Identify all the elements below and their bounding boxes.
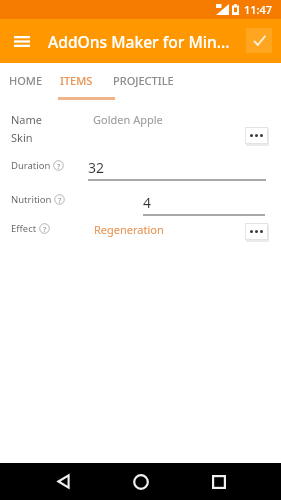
button[interactable]: Help [54,194,65,205]
staticText: AddOns Maker for Min... [48,31,230,52]
staticText: Nutrition [11,193,52,206]
staticText: HOME [9,73,43,88]
staticText: ? [58,195,62,205]
staticText: PROJECTILE [113,73,174,88]
button[interactable]: Back [43,463,83,500]
staticText: 4 [143,193,152,212]
button[interactable]: More options [245,223,268,240]
button[interactable]: Recent apps [199,463,239,500]
button[interactable]: HOME [0,63,53,100]
staticText: 11:47 [244,2,273,17]
staticText: Effect [11,222,37,235]
button[interactable]: ITEMS [53,63,103,100]
staticText: Duration [11,159,51,172]
staticText: ITEMS [60,73,93,88]
button[interactable]: Home [121,463,161,500]
staticText: ? [43,224,47,234]
staticText: Name [11,112,43,127]
button[interactable]: Open navigation drawer [8,27,36,55]
button[interactable]: PROJECTILE [103,63,184,100]
staticText: Regeneration [94,222,164,237]
staticText: 32 [88,158,105,177]
button[interactable]: More options [245,127,268,144]
staticText: Skin [11,130,33,145]
button[interactable]: Help [53,160,64,171]
button[interactable]: Save [246,28,272,53]
button[interactable]: Help [39,223,50,234]
staticText: ? [57,161,61,171]
staticText: Golden Apple [93,112,163,127]
